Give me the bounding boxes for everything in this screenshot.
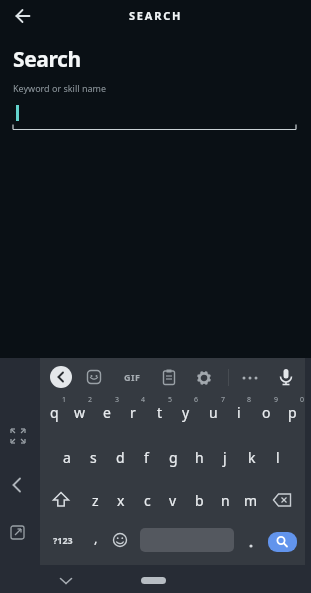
staticText: 9 — [274, 395, 279, 405]
staticText: i — [237, 403, 241, 422]
button[interactable] — [246, 541, 256, 551]
staticText: a — [63, 448, 71, 467]
button[interactable]: GIF — [112, 364, 152, 390]
staticText: 4 — [141, 395, 146, 405]
button[interactable]: h — [186, 444, 212, 470]
button[interactable]: n — [212, 487, 238, 513]
staticText: Search — [13, 45, 81, 74]
button[interactable]: x — [108, 487, 134, 513]
button[interactable]: c — [134, 487, 160, 513]
staticText: l — [276, 448, 280, 467]
button[interactable]: j — [212, 444, 238, 470]
staticText: v — [169, 491, 177, 510]
staticText: z — [92, 491, 99, 510]
staticText: t — [157, 403, 163, 422]
button[interactable] — [50, 489, 72, 511]
button[interactable] — [160, 368, 178, 386]
staticText: 5 — [168, 395, 173, 405]
button[interactable]: k — [239, 444, 265, 470]
button[interactable]: g — [160, 444, 186, 470]
button[interactable]: r — [120, 399, 146, 425]
button[interactable]: e — [94, 399, 120, 425]
button[interactable] — [50, 366, 72, 388]
button[interactable] — [111, 531, 129, 549]
staticText: s — [90, 448, 97, 467]
button[interactable] — [10, 3, 36, 29]
staticText: 0 — [300, 395, 305, 405]
staticText: 8 — [247, 395, 252, 405]
button[interactable] — [277, 367, 295, 387]
staticText: j — [223, 448, 227, 467]
staticText: e — [103, 403, 111, 422]
button[interactable]: q — [41, 399, 67, 425]
staticText: 6 — [194, 395, 199, 405]
button[interactable] — [271, 491, 293, 509]
button[interactable]: ?123 — [46, 528, 80, 552]
button[interactable]: w — [67, 399, 93, 425]
staticText: w — [74, 403, 86, 422]
button[interactable] — [141, 577, 166, 584]
button[interactable]: u — [200, 399, 226, 425]
staticText: g — [169, 448, 178, 467]
button[interactable] — [240, 369, 260, 387]
button[interactable]: i — [226, 399, 252, 425]
button[interactable]: t — [147, 399, 173, 425]
staticText: , — [94, 529, 98, 547]
staticText: h — [195, 448, 204, 467]
button[interactable]: v — [160, 487, 186, 513]
staticText: r — [130, 403, 136, 422]
button[interactable]: m — [238, 487, 264, 513]
staticText: d — [116, 448, 125, 467]
button[interactable]: d — [107, 444, 133, 470]
button[interactable]: z — [82, 487, 108, 513]
button[interactable] — [85, 368, 103, 386]
button[interactable] — [8, 476, 26, 494]
button[interactable] — [195, 369, 213, 387]
button[interactable]: a — [54, 444, 80, 470]
staticText: ?123 — [53, 534, 73, 546]
staticText: k — [248, 448, 256, 467]
staticText: n — [221, 491, 230, 510]
button[interactable] — [58, 575, 74, 587]
staticText: m — [244, 491, 258, 510]
staticText: SEARCH — [129, 8, 183, 23]
button[interactable]: b — [186, 487, 212, 513]
staticText: 3 — [115, 395, 120, 405]
staticText: GIF — [124, 371, 141, 383]
button[interactable]: l — [265, 444, 291, 470]
staticText: f — [144, 448, 149, 467]
button[interactable] — [268, 532, 297, 552]
staticText: q — [50, 403, 59, 422]
staticText: 2 — [88, 395, 93, 405]
staticText: Keyword or skill name — [13, 82, 107, 94]
button[interactable] — [9, 427, 27, 445]
staticText: 1 — [62, 395, 67, 405]
button[interactable] — [9, 523, 27, 541]
staticText: x — [117, 491, 125, 510]
button[interactable]: p — [279, 399, 305, 425]
staticText: 7 — [221, 395, 226, 405]
button[interactable]: s — [80, 444, 106, 470]
staticText: y — [182, 403, 190, 422]
button[interactable]: f — [133, 444, 159, 470]
button[interactable]: , — [87, 526, 105, 550]
staticText: b — [195, 491, 204, 510]
button[interactable]: y — [173, 399, 199, 425]
staticText: c — [144, 491, 151, 510]
button[interactable]: o — [253, 399, 279, 425]
staticText: p — [288, 403, 297, 422]
staticText: o — [262, 403, 271, 422]
staticText: u — [209, 403, 218, 422]
